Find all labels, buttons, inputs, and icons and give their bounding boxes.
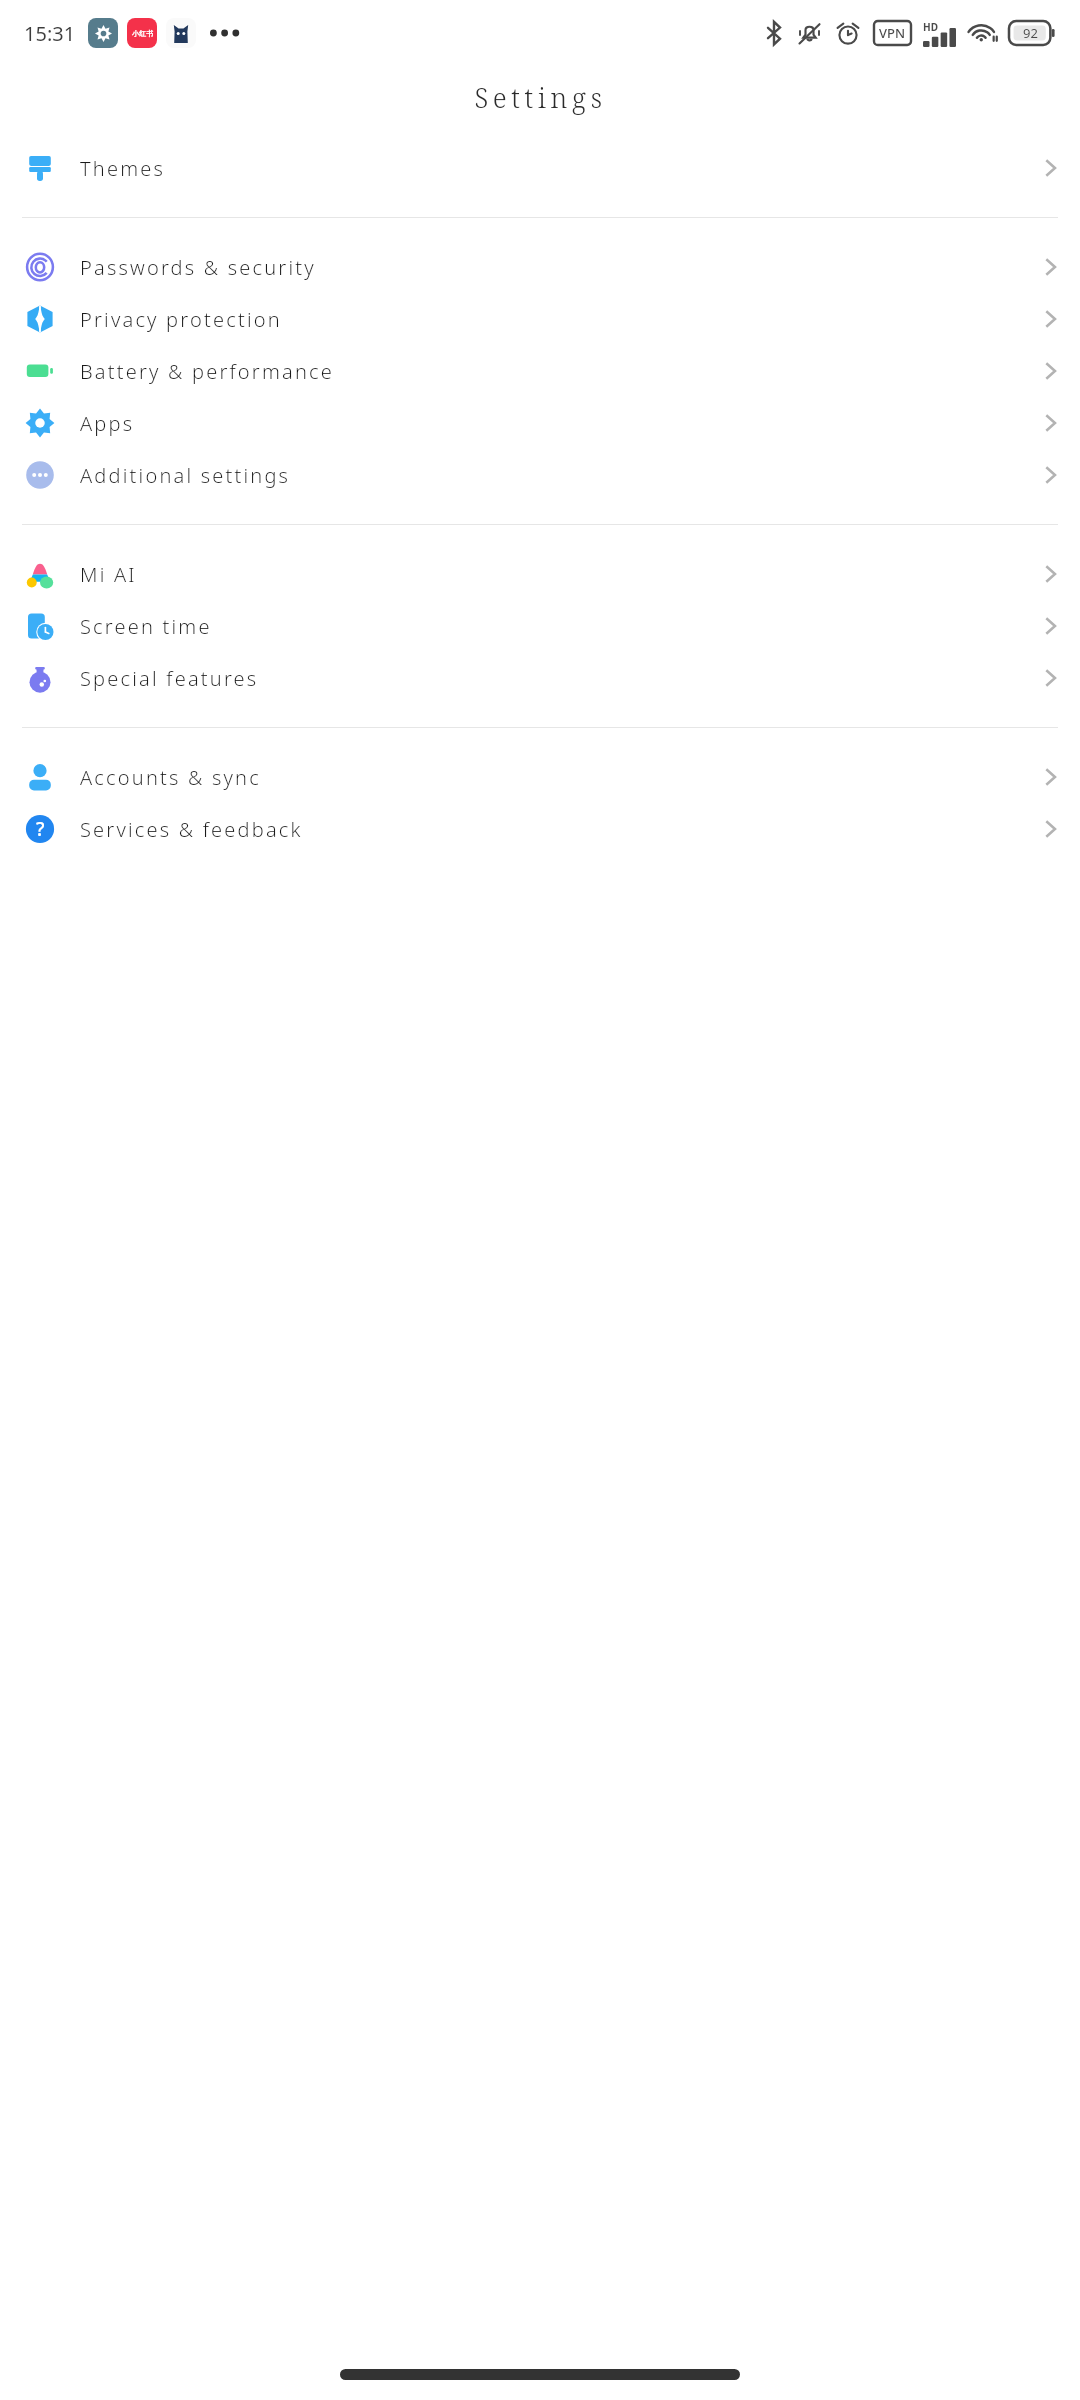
other: Additional settings [25,460,55,490]
staticText: Apps [80,410,135,437]
other: Apps [25,408,55,438]
other: Screen time [25,611,55,641]
staticText: Themes [80,155,165,182]
button[interactable]: Privacy protection [0,293,1080,345]
other: Accounts and sync [25,762,55,792]
staticText: Settings [474,79,607,116]
other: Special features [25,663,55,693]
staticText: 小红书 [132,29,153,38]
other: Privacy protection [25,304,55,334]
staticText: VPN [879,24,906,42]
staticText: Battery & performance [80,358,334,385]
other: Mi AI [25,559,55,589]
other: Passwords and security [25,252,55,282]
staticText: ? [36,816,45,842]
button[interactable]: Battery and performance [0,345,1080,397]
staticText: HD [923,20,938,34]
staticText: Passwords & security [80,254,316,281]
staticText: Special features [80,665,259,692]
button[interactable]: Services and feedback [0,803,1080,855]
other: Themes [25,153,55,183]
staticText: Mi AI [80,561,137,588]
button[interactable]: Mi AI [0,548,1080,600]
button[interactable]: Accounts and sync [0,751,1080,803]
button[interactable]: Themes [0,142,1080,194]
staticText: Screen time [80,613,212,640]
button[interactable]: Special features [0,652,1080,704]
button[interactable]: Screen time [0,600,1080,652]
button[interactable]: Apps [0,397,1080,449]
other: Battery and performance [25,356,55,386]
button[interactable]: Additional settings [0,449,1080,501]
staticText: Accounts & sync [80,764,261,791]
other: Services and feedback [25,814,55,844]
staticText: Privacy protection [80,306,282,333]
staticText: Services & feedback [80,816,303,843]
button[interactable]: Passwords and security [0,241,1080,293]
staticText: 15:31 [24,20,76,47]
staticText: 92 [1023,24,1038,42]
staticText: Additional settings [80,462,291,489]
